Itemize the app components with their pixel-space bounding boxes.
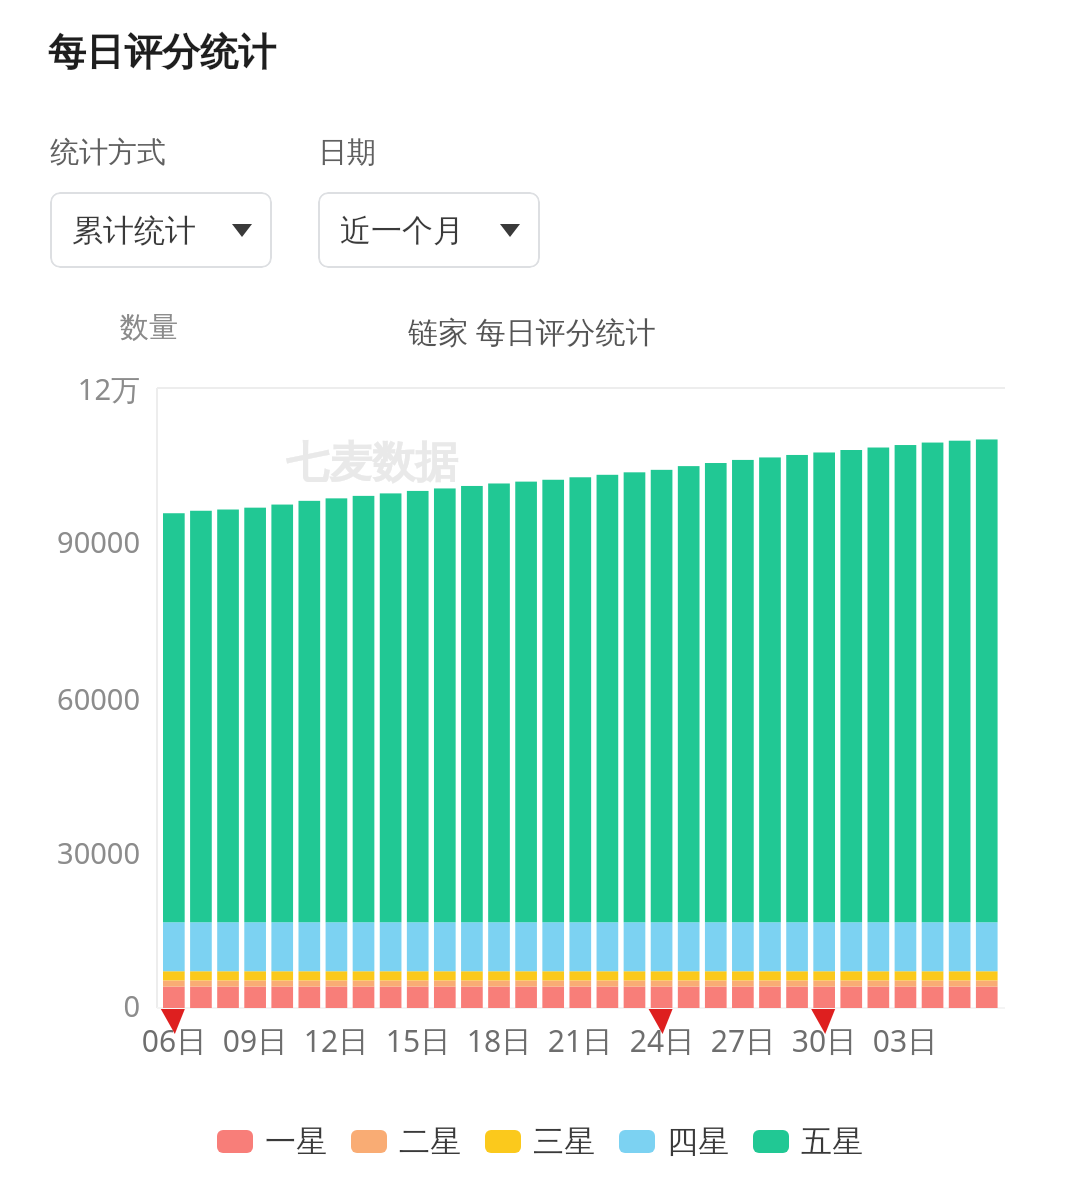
staticText: 21日 bbox=[520, 1020, 640, 1061]
button[interactable]: 四星 bbox=[607, 1122, 741, 1161]
staticText: 数量 bbox=[120, 309, 178, 346]
staticText: 0 bbox=[0, 986, 140, 1025]
button[interactable]: 累计统计 bbox=[50, 192, 272, 268]
staticText: 12万 bbox=[0, 369, 140, 409]
staticText: 90000 bbox=[0, 522, 140, 561]
button[interactable]: 三星 bbox=[473, 1122, 607, 1161]
staticText: 二星 bbox=[399, 1122, 461, 1161]
staticText: 30日 bbox=[764, 1020, 884, 1061]
staticText: 累计统计 bbox=[72, 211, 196, 250]
staticText: 统计方式 bbox=[50, 134, 166, 171]
staticText: 06日 bbox=[114, 1020, 234, 1061]
staticText: 四星 bbox=[667, 1122, 729, 1161]
staticText: 30000 bbox=[0, 833, 140, 872]
staticText: 五星 bbox=[801, 1122, 863, 1161]
button[interactable]: 近一个月 bbox=[318, 192, 540, 268]
staticText: 近一个月 bbox=[340, 211, 464, 250]
staticText: 三星 bbox=[533, 1122, 595, 1161]
button[interactable]: 二星 bbox=[339, 1122, 473, 1161]
staticText: 一星 bbox=[265, 1122, 327, 1161]
button[interactable]: 一星 bbox=[205, 1122, 339, 1161]
staticText: 03日 bbox=[845, 1020, 965, 1061]
staticText: 链家 每日评分统计 bbox=[408, 311, 656, 352]
staticText: 09日 bbox=[195, 1020, 315, 1061]
staticText: 每日评分统计 bbox=[48, 28, 276, 76]
staticText: 60000 bbox=[0, 679, 140, 718]
staticText: 七麦数据 bbox=[286, 436, 458, 490]
staticText: 27日 bbox=[683, 1020, 803, 1061]
staticText: 24日 bbox=[602, 1020, 722, 1061]
staticText: 18日 bbox=[439, 1020, 559, 1061]
button[interactable]: 五星 bbox=[741, 1122, 875, 1161]
staticText: 15日 bbox=[358, 1020, 478, 1061]
staticText: 日期 bbox=[318, 134, 376, 171]
staticText: 12日 bbox=[276, 1020, 396, 1061]
